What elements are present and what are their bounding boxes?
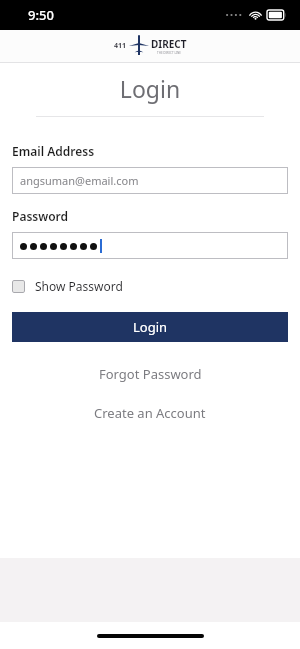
button[interactable]: Create an Account [12,399,288,427]
button[interactable] [12,232,288,259]
staticText: Show Password [35,278,123,294]
staticText: Password [12,208,69,224]
staticText: Forgot Password [99,365,202,383]
staticText: 411 [114,41,127,51]
button[interactable]: angsuman@email.com [12,167,288,194]
button[interactable]: Show Password [12,275,123,297]
staticText: angsuman@email.com [20,173,139,188]
staticText: THE DIRECT LINE [157,51,181,55]
staticText: 9:50 [28,6,54,24]
staticText: DIRECT [151,37,187,51]
staticText: Email Address [12,143,95,159]
button[interactable]: Forgot Password [12,360,288,388]
button[interactable]: Login [12,312,288,342]
staticText: Create an Account [94,404,206,422]
staticText: Login [133,318,168,336]
staticText: Login [0,73,300,104]
